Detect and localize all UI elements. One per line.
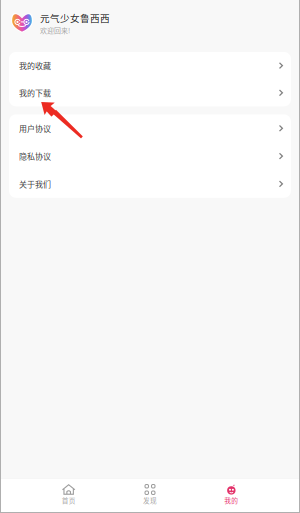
staticText: 首页 xyxy=(62,495,76,505)
staticText: 元气少女鲁西西 xyxy=(40,11,110,25)
staticText: 隐私协议 xyxy=(19,150,51,162)
staticText: 发现 xyxy=(143,495,157,505)
button[interactable]: 发现 xyxy=(109,478,191,513)
staticText: 欢迎回来! xyxy=(40,25,70,35)
button[interactable]: 关于我们 xyxy=(9,170,291,198)
staticText: 我的 xyxy=(224,495,238,505)
button[interactable]: 用户协议 xyxy=(9,114,291,142)
staticText: 我的收藏 xyxy=(19,60,51,71)
staticText: 关于我们 xyxy=(19,178,51,190)
button[interactable]: 我的收藏 xyxy=(9,52,291,79)
staticText: 我的下载 xyxy=(19,87,51,99)
button[interactable]: 隐私协议 xyxy=(9,142,291,170)
button[interactable]: 首页 xyxy=(28,478,109,513)
staticText: 用户协议 xyxy=(19,122,51,134)
button[interactable]: 我的 xyxy=(191,478,272,513)
button[interactable]: 我的下载 xyxy=(9,79,291,106)
